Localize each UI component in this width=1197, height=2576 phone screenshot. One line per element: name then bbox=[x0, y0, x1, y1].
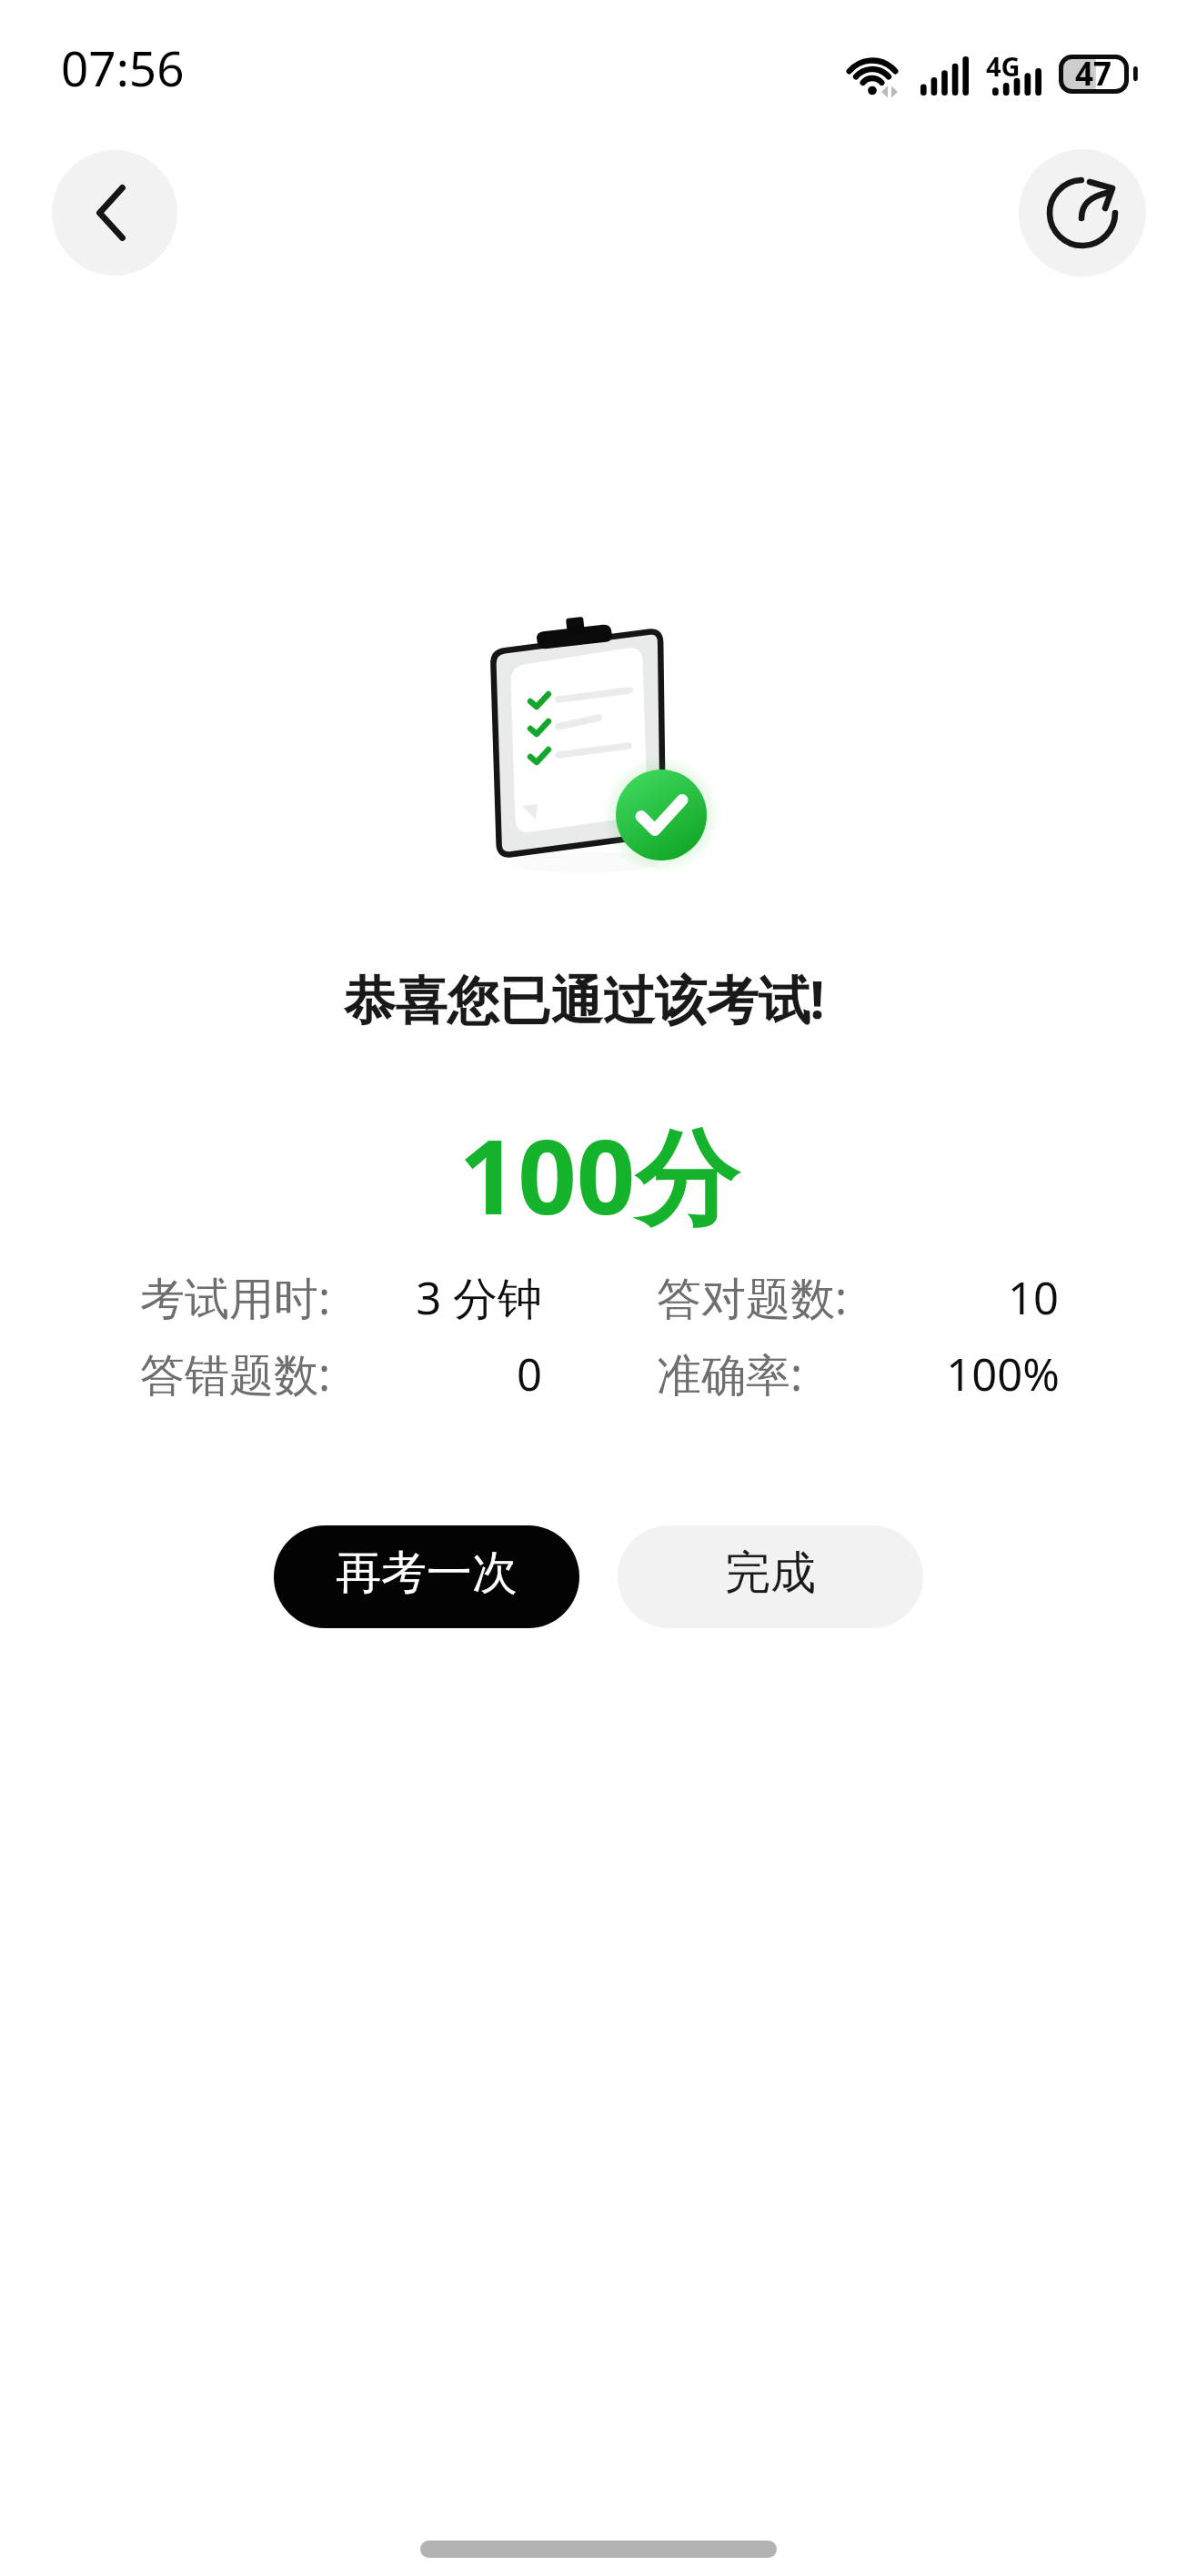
staticText: 完成 bbox=[725, 1545, 816, 1602]
staticText: 考试用时: bbox=[140, 1267, 331, 1328]
staticText: 答错题数: bbox=[140, 1343, 331, 1404]
staticText: 10 bbox=[822, 1267, 1059, 1328]
staticText: 恭喜您已通过该考试! bbox=[0, 963, 1182, 1034]
staticText: 4G bbox=[986, 48, 1021, 84]
button[interactable]: Share bbox=[1019, 149, 1146, 277]
button[interactable]: Back bbox=[52, 150, 177, 276]
staticText: 100分 bbox=[0, 1104, 1197, 1244]
staticText: 准确率: bbox=[657, 1343, 803, 1404]
staticText: 3 分钟 bbox=[306, 1267, 542, 1328]
staticText: 47 bbox=[1075, 52, 1112, 96]
staticText: 100% bbox=[823, 1343, 1060, 1404]
button[interactable]: 完成 bbox=[618, 1525, 923, 1628]
staticText: 再考一次 bbox=[336, 1545, 518, 1602]
staticText: 答对题数: bbox=[657, 1267, 848, 1328]
staticText: 07:56 bbox=[61, 35, 185, 100]
button[interactable]: 再考一次 bbox=[274, 1525, 579, 1628]
staticText: 0 bbox=[306, 1343, 542, 1404]
